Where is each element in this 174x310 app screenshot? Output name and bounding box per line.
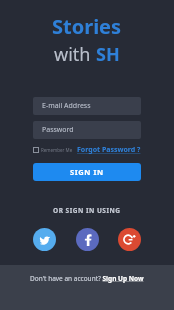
staticText: SIGN IN	[70, 167, 104, 177]
button[interactable]: Remember Me	[33, 147, 75, 153]
button[interactable]: E-mail Address	[33, 97, 141, 115]
button[interactable]: Forgot Password ?	[77, 145, 141, 155]
button[interactable]: Don't have an account? Sign Up Now	[30, 274, 144, 283]
staticText: E-mail Address	[42, 101, 91, 111]
staticText: with	[54, 42, 96, 67]
button[interactable]: SIGN IN	[33, 163, 141, 181]
staticText: Stories	[52, 13, 122, 40]
staticText: Password	[42, 125, 74, 135]
button[interactable]: Google Plus	[118, 228, 141, 251]
staticText: OR SIGN IN USING	[53, 206, 121, 215]
button[interactable]: Twitter	[33, 228, 56, 251]
staticText: Forgot Password ?	[77, 145, 141, 155]
staticText: Don't have an account? Sign Up Now	[30, 274, 144, 283]
staticText: Remember Me	[41, 147, 73, 153]
button[interactable]: Password	[33, 121, 141, 139]
button[interactable]: Facebook	[76, 228, 99, 251]
staticText: SH	[96, 42, 120, 67]
